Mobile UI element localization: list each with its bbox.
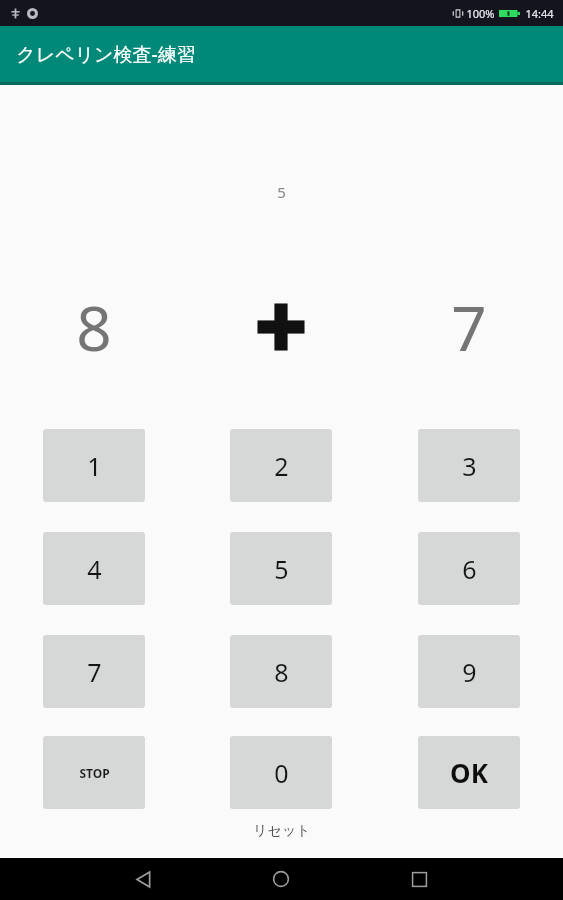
button[interactable]: 5 [230,532,332,605]
staticText: 8 [76,285,112,369]
staticText: 7 [87,655,102,689]
button[interactable]: OK [418,736,520,809]
staticText: リセット [253,822,311,840]
button[interactable]: 3 [418,429,520,502]
button[interactable]: 6 [418,532,520,605]
staticText: OK [450,755,488,790]
button[interactable]: 8 [230,635,332,708]
staticText: 5 [274,552,289,586]
button[interactable]: 9 [418,635,520,708]
button[interactable]: Home [259,858,303,900]
staticText: 14:44 [525,6,554,21]
staticText: 4 [87,552,102,586]
staticText: 6 [462,552,477,586]
staticText: STOP [79,765,110,781]
staticText: 2 [274,449,289,483]
staticText: 9 [462,655,477,689]
button[interactable]: Recent apps [397,858,441,900]
button[interactable]: Back [121,858,165,900]
button[interactable]: 2 [230,429,332,502]
staticText: 5 [277,182,286,202]
button[interactable]: 7 [43,635,145,708]
button[interactable]: STOP [43,736,145,809]
staticText: 1 [87,449,102,483]
staticText: 7 [451,285,487,369]
button[interactable]: 4 [43,532,145,605]
button[interactable]: 0 [230,736,332,809]
button[interactable]: 1 [43,429,145,502]
staticText: 0 [274,756,289,790]
staticText: 3 [462,449,477,483]
staticText: 100% [466,6,495,21]
staticText: クレペリン検査-練習 [16,41,196,67]
staticText: 8 [274,655,289,689]
button[interactable]: リセット [243,819,321,843]
